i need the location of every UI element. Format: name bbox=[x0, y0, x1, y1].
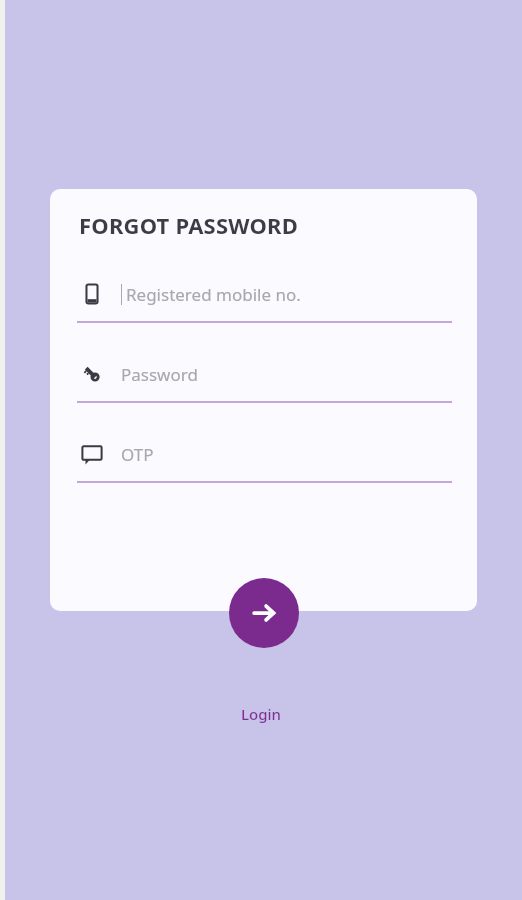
staticText: Registered mobile no. bbox=[126, 283, 301, 306]
button[interactable]: Login bbox=[0, 699, 522, 729]
staticText: OTP bbox=[121, 443, 154, 466]
button[interactable]: Registered mobile no. bbox=[77, 279, 452, 323]
staticText: Password bbox=[121, 363, 198, 386]
button[interactable]: OTP bbox=[77, 439, 452, 483]
staticText: FORGOT PASSWORD bbox=[79, 210, 299, 240]
staticText: Login bbox=[241, 704, 281, 724]
button[interactable]: Password bbox=[77, 359, 452, 403]
button[interactable]: Submit bbox=[229, 578, 299, 648]
